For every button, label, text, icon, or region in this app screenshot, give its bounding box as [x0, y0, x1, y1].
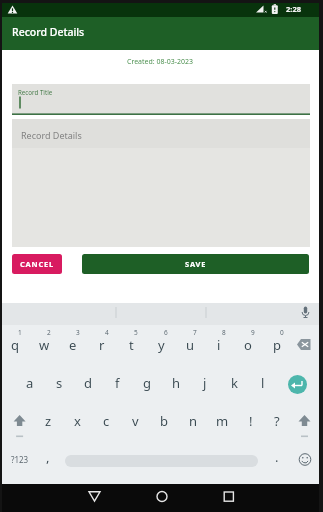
button[interactable]: e: [59, 330, 87, 360]
button[interactable]: Record Title: [12, 84, 310, 115]
button[interactable]: b: [150, 406, 178, 436]
button[interactable]: a: [16, 368, 44, 398]
button[interactable]: SAVE: [82, 254, 309, 274]
button[interactable]: [290, 330, 318, 358]
button[interactable]: [2, 484, 107, 512]
button[interactable]: c: [92, 406, 120, 436]
staticText: k: [231, 374, 238, 392]
staticText: 7: [193, 328, 197, 337]
button[interactable]: Record Details: [12, 119, 310, 247]
button[interactable]: [213, 484, 319, 512]
button[interactable]: j: [191, 368, 219, 398]
staticText: h: [172, 374, 181, 392]
staticText: w: [39, 336, 50, 354]
staticText: j: [203, 374, 207, 392]
staticText: 0: [280, 328, 284, 337]
button[interactable]: [107, 484, 213, 512]
button[interactable]: CANCEL: [12, 254, 62, 274]
staticText: u: [186, 336, 195, 354]
button[interactable]: x: [63, 406, 91, 436]
staticText: r: [99, 336, 105, 354]
staticText: 4: [105, 328, 109, 337]
staticText: n: [189, 412, 198, 430]
staticText: 2: [47, 328, 51, 337]
button[interactable]: d: [74, 368, 102, 398]
staticText: f: [115, 374, 120, 392]
button[interactable]: q: [1, 330, 29, 360]
button[interactable]: s: [45, 368, 73, 398]
staticText: b: [160, 412, 168, 430]
staticText: p: [273, 336, 281, 354]
staticText: !: [249, 412, 253, 430]
button[interactable]: [295, 449, 315, 469]
staticText: .: [275, 448, 279, 466]
staticText: SAVE: [185, 259, 207, 269]
staticText: e: [69, 336, 77, 354]
button[interactable]: ?: [263, 406, 291, 436]
button[interactable]: [288, 375, 307, 394]
staticText: ?: [274, 412, 280, 430]
button[interactable]: o: [234, 330, 262, 360]
staticText: 5: [134, 328, 138, 337]
button[interactable]: p: [263, 330, 291, 360]
button[interactable]: t: [117, 330, 145, 360]
staticText: 3: [76, 328, 80, 337]
staticText: ?123: [11, 454, 29, 465]
button[interactable]: h: [162, 368, 190, 398]
staticText: 8: [222, 328, 226, 337]
staticText: Created: 08-03-2023: [127, 57, 194, 67]
button[interactable]: l: [249, 368, 277, 398]
staticText: t: [129, 336, 134, 354]
staticText: s: [56, 374, 63, 392]
button[interactable]: u: [176, 330, 204, 360]
button[interactable]: !: [237, 406, 265, 436]
button[interactable]: k: [220, 368, 248, 398]
button[interactable]: f: [103, 368, 131, 398]
staticText: z: [45, 412, 52, 430]
staticText: Record Details: [21, 129, 82, 141]
button[interactable]: n: [179, 406, 207, 436]
staticText: g: [143, 374, 151, 392]
button[interactable]: z: [34, 406, 62, 436]
button[interactable]: y: [147, 330, 175, 360]
staticText: a: [26, 374, 34, 392]
staticText: 2:28: [286, 4, 301, 14]
staticText: 1: [18, 328, 22, 337]
staticText: Record Title: [18, 88, 53, 96]
staticText: 6: [164, 328, 168, 337]
staticText: c: [103, 412, 110, 430]
staticText: l: [261, 374, 265, 392]
button[interactable]: w: [30, 330, 58, 360]
staticText: o: [244, 336, 252, 354]
staticText: CANCEL: [20, 259, 55, 269]
staticText: m: [216, 412, 229, 430]
staticText: i: [217, 336, 221, 354]
button[interactable]: r: [88, 330, 116, 360]
staticText: ,: [46, 448, 50, 466]
staticText: q: [11, 336, 19, 354]
button[interactable]: m: [208, 406, 236, 436]
staticText: v: [132, 412, 139, 430]
button[interactable]: i: [205, 330, 233, 360]
staticText: y: [158, 336, 165, 354]
staticText: 9: [251, 328, 255, 337]
staticText: Record Details: [12, 25, 85, 39]
button[interactable]: .: [267, 443, 287, 471]
button[interactable]: ?123: [3, 445, 37, 473]
staticText: d: [84, 374, 92, 392]
button[interactable]: v: [121, 406, 149, 436]
button[interactable]: g: [133, 368, 161, 398]
button[interactable]: ,: [38, 443, 58, 471]
staticText: x: [74, 412, 81, 430]
